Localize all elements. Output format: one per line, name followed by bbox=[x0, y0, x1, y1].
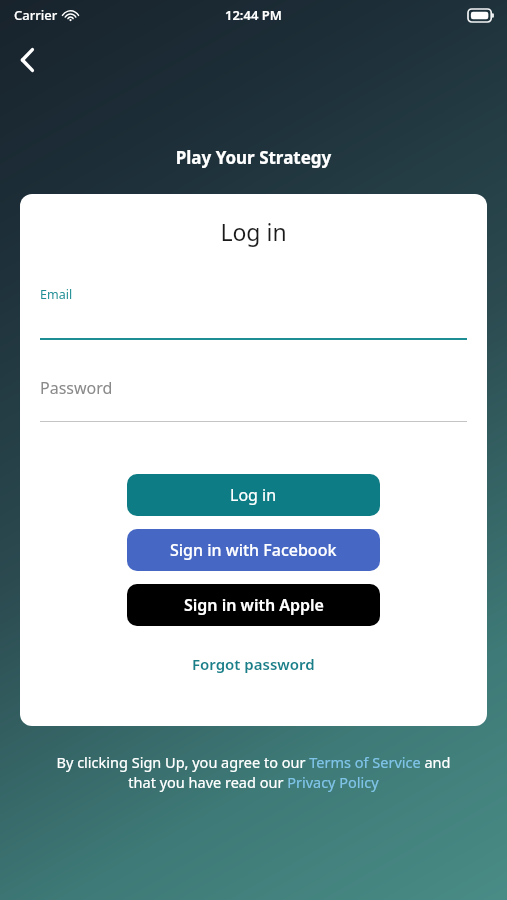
button[interactable]: Sign in with Facebook bbox=[127, 529, 380, 571]
staticText: Sign in with Facebook bbox=[170, 539, 337, 561]
button[interactable]: Log in bbox=[127, 474, 380, 516]
button[interactable]: By clicking Sign Up, you agree to our Te… bbox=[42, 752, 465, 793]
staticText: Sign in with Apple bbox=[184, 594, 324, 616]
staticText: Log in bbox=[230, 484, 277, 506]
button[interactable]: Forgot password bbox=[20, 648, 487, 680]
staticText: Forgot password bbox=[192, 654, 315, 674]
staticText: Play Your Strategy bbox=[0, 146, 507, 169]
button[interactable]: Back bbox=[6, 38, 50, 82]
staticText: Password bbox=[40, 377, 113, 399]
staticText: Email bbox=[40, 286, 73, 303]
button[interactable]: Email bbox=[40, 286, 467, 340]
staticText: Log in bbox=[20, 216, 487, 247]
button[interactable]: Sign in with Apple bbox=[127, 584, 380, 626]
staticText: 12:44 PM bbox=[225, 6, 282, 24]
button[interactable]: Password bbox=[40, 377, 467, 422]
staticText: Carrier bbox=[14, 6, 58, 24]
